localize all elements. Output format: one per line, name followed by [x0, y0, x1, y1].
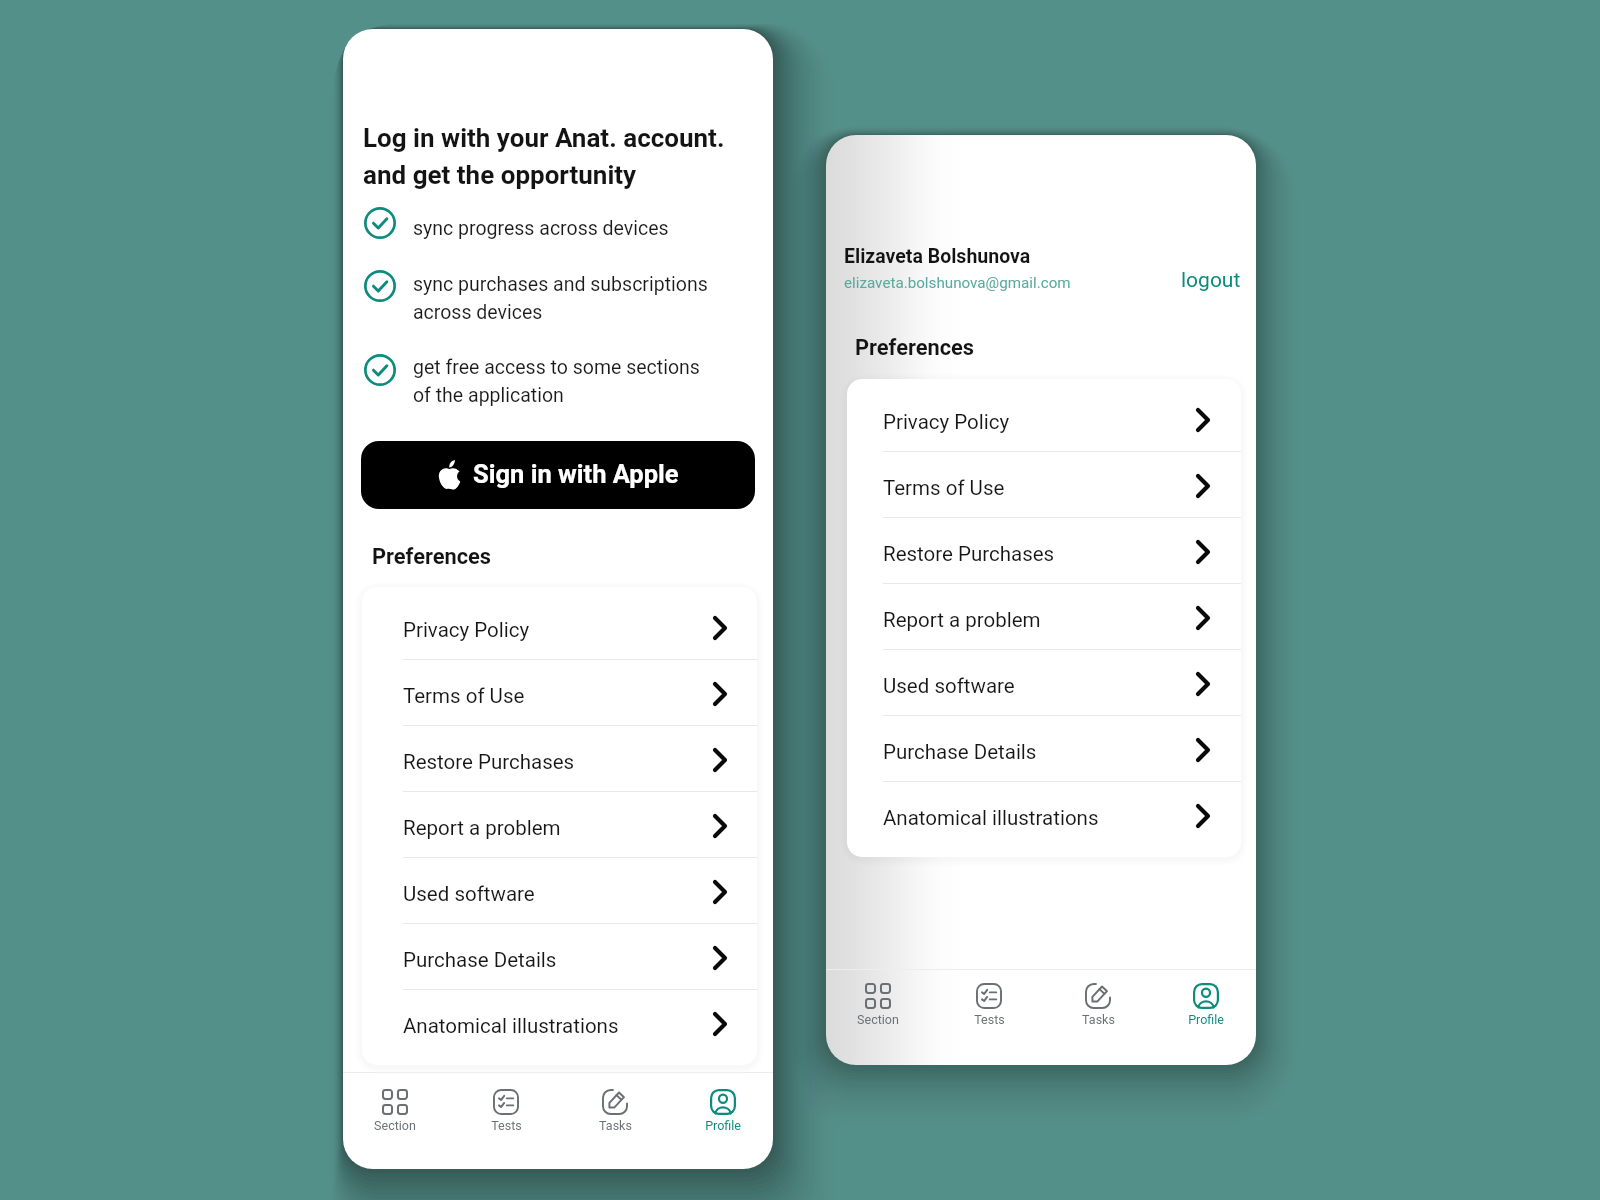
staticText: Report a problem — [403, 816, 561, 840]
button[interactable]: Restore Purchases — [847, 518, 1241, 584]
button[interactable]: Section — [352, 1083, 438, 1133]
button[interactable]: Report a problem — [847, 584, 1241, 650]
staticText: sync purchases and subscriptions across … — [413, 273, 708, 324]
staticText: Preferences — [855, 335, 975, 361]
staticText: Restore Purchases — [883, 542, 1055, 566]
staticText: Profile — [705, 1118, 741, 1133]
staticText: Report a problem — [883, 608, 1041, 632]
staticText: Preferences — [372, 544, 492, 570]
staticText: Anatomical illustrations — [883, 806, 1099, 830]
staticText: Profile — [1188, 1012, 1224, 1027]
button[interactable]: logout — [1171, 258, 1251, 303]
staticText: Used software — [403, 882, 535, 906]
button[interactable]: Privacy Policy — [362, 594, 757, 660]
staticText: Tests — [974, 1012, 1005, 1027]
staticText: Purchase Details — [403, 948, 557, 972]
button[interactable]: Section — [835, 977, 921, 1027]
button[interactable]: Report a problem — [362, 792, 757, 858]
staticText: Terms of Use — [883, 476, 1005, 500]
button[interactable]: Purchase Details — [362, 924, 757, 990]
staticText: Privacy Policy — [883, 410, 1010, 434]
button[interactable]: Profile — [1163, 977, 1249, 1027]
button[interactable]: Anatomical illustrations — [362, 990, 757, 1056]
staticText: Restore Purchases — [403, 750, 575, 774]
staticText: Anatomical illustrations — [403, 1014, 619, 1038]
button[interactable]: Terms of Use — [847, 452, 1241, 518]
staticText: Tests — [491, 1118, 522, 1133]
staticText: Section — [374, 1118, 416, 1133]
button[interactable]: Sign in with Apple — [361, 441, 755, 509]
button[interactable]: Profile — [680, 1083, 766, 1133]
staticText: Used software — [883, 674, 1015, 698]
staticText: Tasks — [1082, 1012, 1115, 1027]
button[interactable]: Tasks — [1055, 977, 1141, 1027]
button[interactable]: Tests — [463, 1083, 549, 1133]
staticText: Tasks — [599, 1118, 632, 1133]
staticText: Terms of Use — [403, 684, 525, 708]
staticText: logout — [1181, 268, 1241, 293]
button[interactable]: Restore Purchases — [362, 726, 757, 792]
button[interactable]: Tests — [946, 977, 1032, 1027]
button[interactable]: Terms of Use — [362, 660, 757, 726]
staticText: sync progress across devices — [413, 217, 669, 240]
staticText: Section — [857, 1012, 899, 1027]
button[interactable]: Used software — [362, 858, 757, 924]
button[interactable]: Purchase Details — [847, 716, 1241, 782]
staticText: Purchase Details — [883, 740, 1037, 764]
button[interactable]: Anatomical illustrations — [847, 782, 1241, 848]
staticText: Log in with your Anat. account. and get … — [363, 123, 725, 190]
staticText: Privacy Policy — [403, 618, 530, 642]
button[interactable]: Tasks — [572, 1083, 658, 1133]
staticText: get free access to some sections of the … — [413, 356, 700, 407]
staticText: Sign in with Apple — [473, 459, 679, 489]
staticText: Elizaveta Bolshunova — [844, 245, 1031, 268]
button[interactable]: Privacy Policy — [847, 386, 1241, 452]
button[interactable]: Used software — [847, 650, 1241, 716]
staticText: elizaveta.bolshunova@gmail.com — [844, 274, 1071, 292]
